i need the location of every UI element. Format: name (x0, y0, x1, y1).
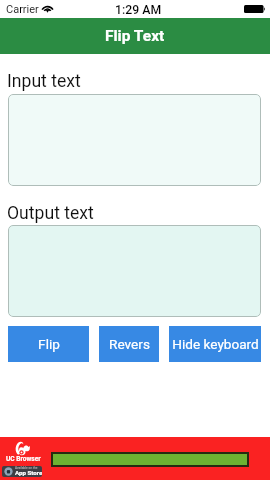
button[interactable]: Flip Text (0, 18, 270, 54)
button[interactable]: Flip (8, 326, 89, 362)
other: Battery (244, 5, 265, 13)
button[interactable]: Text field (8, 94, 261, 186)
staticText: Available on the (15, 466, 38, 470)
staticText: UC Browser (6, 455, 41, 463)
staticText: Input text (7, 71, 81, 92)
button[interactable]: Advertisement: UC Browser (0, 437, 270, 480)
other: Wi-Fi (42, 4, 53, 13)
staticText: Flip (38, 336, 60, 352)
staticText: Output text (7, 203, 94, 224)
staticText: Carrier (6, 3, 39, 16)
staticText: Revers (109, 336, 150, 352)
button[interactable]: Hide keyboard (169, 326, 261, 362)
staticText: 1:29 AM (115, 3, 162, 17)
button[interactable]: Revers (99, 326, 159, 362)
staticText: App Store (15, 469, 42, 476)
button[interactable]: Text field (8, 225, 261, 317)
staticText: Hide keyboard (172, 336, 259, 352)
button[interactable]: Available on the (2, 466, 42, 477)
staticText: Flip Text (105, 27, 165, 45)
